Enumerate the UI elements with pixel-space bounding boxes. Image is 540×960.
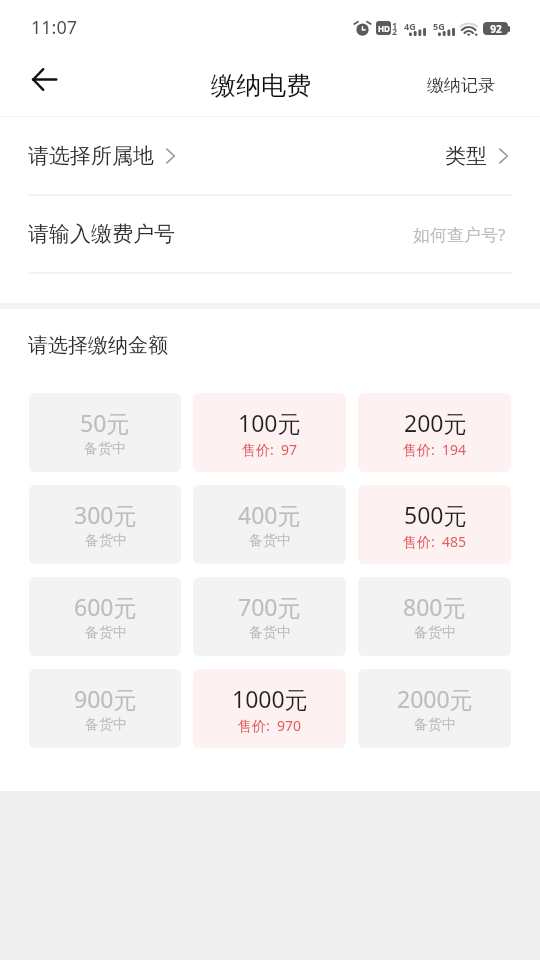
staticText: 1: [392, 19, 398, 31]
staticText: 售价: 485: [403, 532, 467, 551]
staticText: 售价: 970: [238, 716, 302, 735]
staticText: 700元: [238, 591, 301, 622]
button[interactable]: 200元: [358, 393, 511, 472]
button[interactable]: 如何查户号?: [413, 223, 506, 246]
staticText: 缴纳记录: [427, 75, 495, 96]
button[interactable]: 700元: [193, 577, 346, 656]
staticText: 如何查户号?: [413, 223, 506, 246]
staticText: 备货中: [85, 532, 127, 550]
button[interactable]: 900元: [29, 669, 181, 748]
button[interactable]: 2000元: [358, 669, 511, 748]
button[interactable]: 50元: [29, 393, 181, 472]
button[interactable]: Back: [18, 53, 71, 106]
staticText: 1000元: [232, 683, 308, 714]
staticText: 请输入缴费户号: [28, 221, 175, 247]
staticText: 92: [490, 22, 502, 35]
staticText: 备货中: [414, 624, 456, 642]
button[interactable]: 800元: [358, 577, 511, 656]
button[interactable]: 请选择所属地: [0, 117, 540, 194]
staticText: 备货中: [414, 716, 456, 734]
staticText: 500元: [404, 499, 467, 530]
button[interactable]: 600元: [29, 577, 181, 656]
staticText: 2000元: [397, 683, 473, 714]
staticText: 200元: [404, 407, 467, 438]
button[interactable]: 300元: [29, 485, 181, 564]
staticText: 类型: [445, 143, 487, 169]
staticText: 600元: [74, 591, 137, 622]
staticText: 备货中: [85, 716, 127, 734]
staticText: 请选择所属地: [28, 143, 154, 169]
staticText: 50元: [80, 407, 130, 438]
staticText: 缴纳电费: [211, 70, 311, 101]
button[interactable]: 缴纳记录: [411, 61, 540, 110]
staticText: 售价: 97: [242, 440, 298, 459]
staticText: 售价: 194: [403, 440, 467, 459]
button[interactable]: 400元: [193, 485, 346, 564]
staticText: 备货中: [84, 440, 126, 458]
staticText: HD: [378, 23, 390, 34]
staticText: 100元: [238, 407, 301, 438]
staticText: 5G: [433, 20, 445, 32]
staticText: 300元: [74, 499, 137, 530]
staticText: 备货中: [85, 624, 127, 642]
button[interactable]: 100元: [193, 393, 346, 472]
staticText: 请选择缴纳金额: [28, 333, 168, 358]
staticText: 备货中: [249, 624, 291, 642]
staticText: 备货中: [249, 532, 291, 550]
staticText: 400元: [238, 499, 301, 530]
button[interactable]: 500元: [358, 485, 511, 564]
staticText: 11:07: [31, 15, 78, 40]
staticText: 900元: [74, 683, 137, 714]
button[interactable]: 1000元: [193, 669, 346, 748]
staticText: 800元: [403, 591, 466, 622]
staticText: 2: [392, 25, 398, 37]
staticText: 4G: [404, 20, 416, 32]
